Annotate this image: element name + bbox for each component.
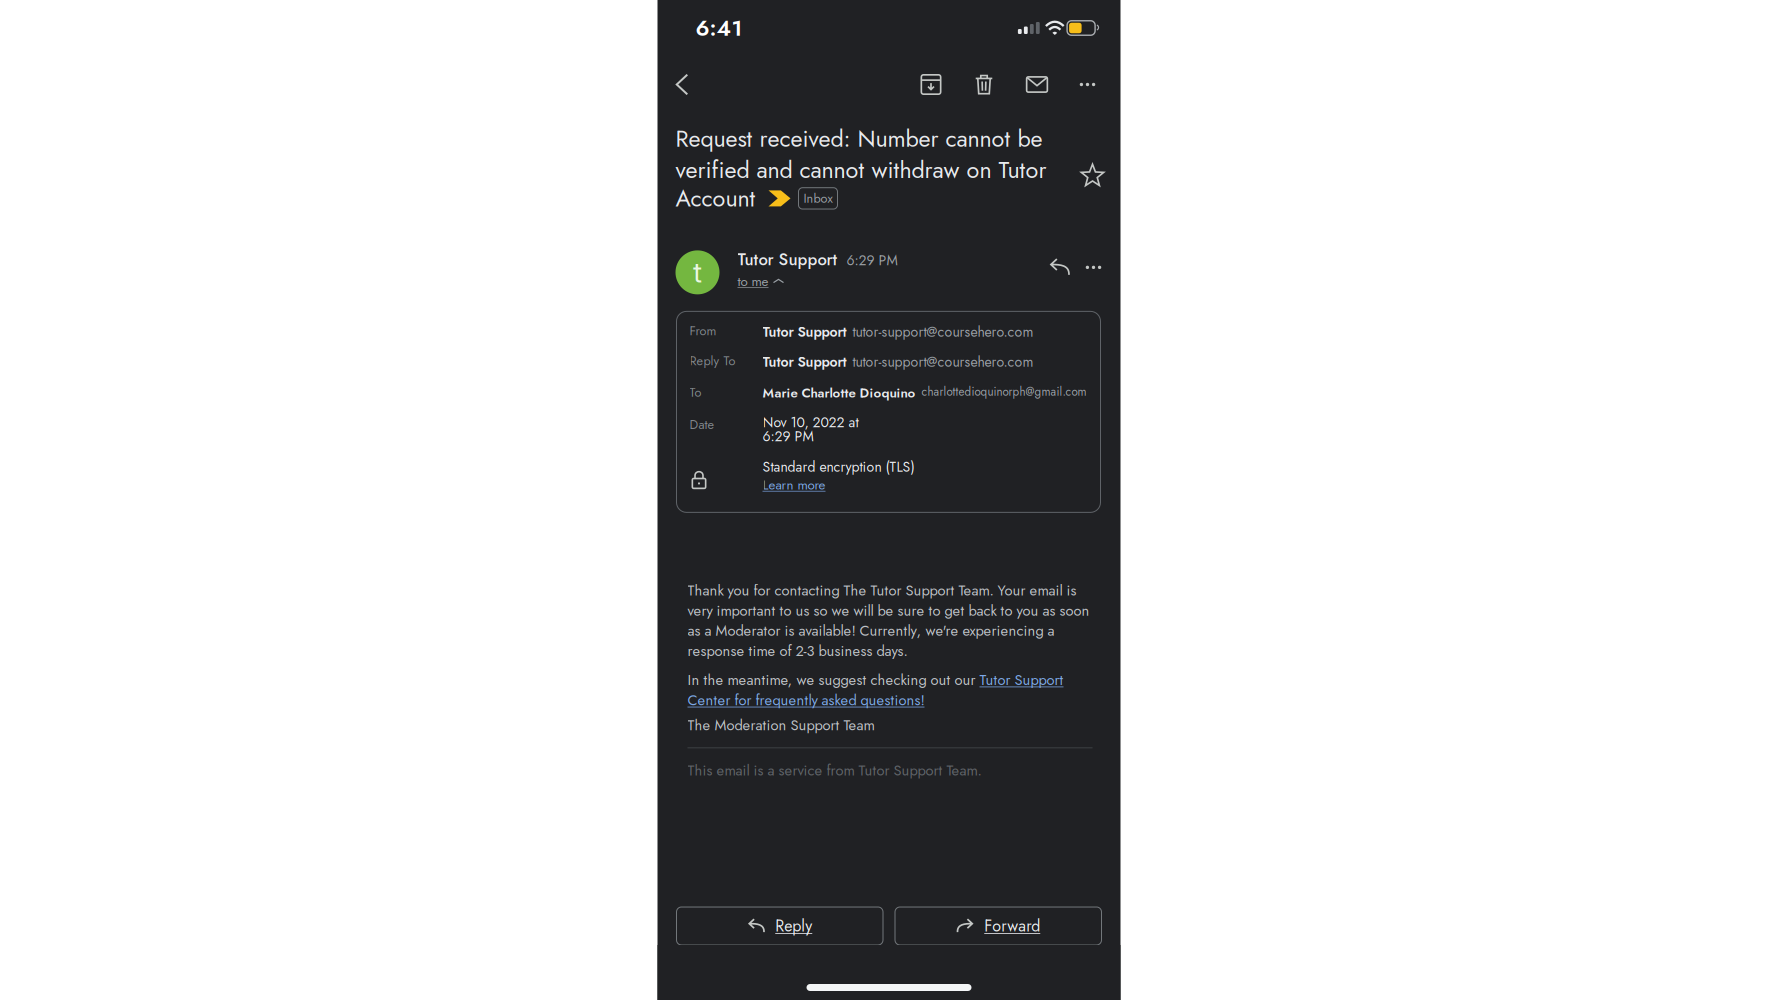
staticText: Forward <box>984 914 1040 937</box>
button[interactable]: Archive <box>904 59 957 109</box>
staticText: Tutor Support <box>762 352 846 372</box>
staticText: Tutor Support <box>762 322 846 342</box>
staticText: To <box>689 383 701 401</box>
button[interactable]: Mark as unread <box>1010 59 1063 109</box>
button[interactable]: Reply <box>1042 250 1076 284</box>
button[interactable]: Star <box>1070 153 1114 197</box>
staticText: 6:41 <box>695 12 742 44</box>
staticText: charlottedioquinorph@gmail.com <box>921 383 1086 400</box>
button[interactable]: Reply <box>676 907 883 945</box>
staticText: 6:29 PM <box>762 426 813 446</box>
staticText: tutor-support@coursehero.com <box>852 322 1033 342</box>
button[interactable]: Forward <box>895 907 1101 945</box>
staticText: t <box>693 255 702 289</box>
staticText: Reply <box>775 914 812 937</box>
staticText: tutor-support@coursehero.com <box>852 352 1033 372</box>
staticText: Account <box>675 183 755 214</box>
staticText: Nov 10, 2022 at <box>762 412 858 432</box>
staticText: Date <box>689 415 714 434</box>
staticText: Inbox <box>803 189 832 207</box>
button[interactable]: More options <box>1063 59 1111 109</box>
staticText: This email is a service from Tutor Suppo… <box>687 760 981 780</box>
staticText: In the meantime, we suggest checking out… <box>687 670 1063 710</box>
staticText: Standard encryption (TLS) <box>762 457 914 477</box>
staticText: Request received: Number cannot be verif… <box>675 123 1046 185</box>
staticText: Learn more <box>762 475 825 494</box>
staticText: 6:29 PM <box>846 250 897 270</box>
button[interactable]: More <box>1076 250 1110 284</box>
staticText: The Moderation Support Team <box>687 715 874 735</box>
staticText: From <box>689 322 716 340</box>
staticText: Thank you for contacting The Tutor Suppo… <box>687 580 1089 661</box>
staticText: to me <box>737 272 768 291</box>
staticText: Tutor Support <box>737 247 837 271</box>
button[interactable]: Back <box>660 59 704 109</box>
button[interactable]: Delete <box>957 59 1010 109</box>
staticText: Reply To <box>689 352 735 370</box>
staticText: Marie Charlotte Dioquino <box>762 383 915 402</box>
button[interactable]: Learn more <box>762 477 825 492</box>
